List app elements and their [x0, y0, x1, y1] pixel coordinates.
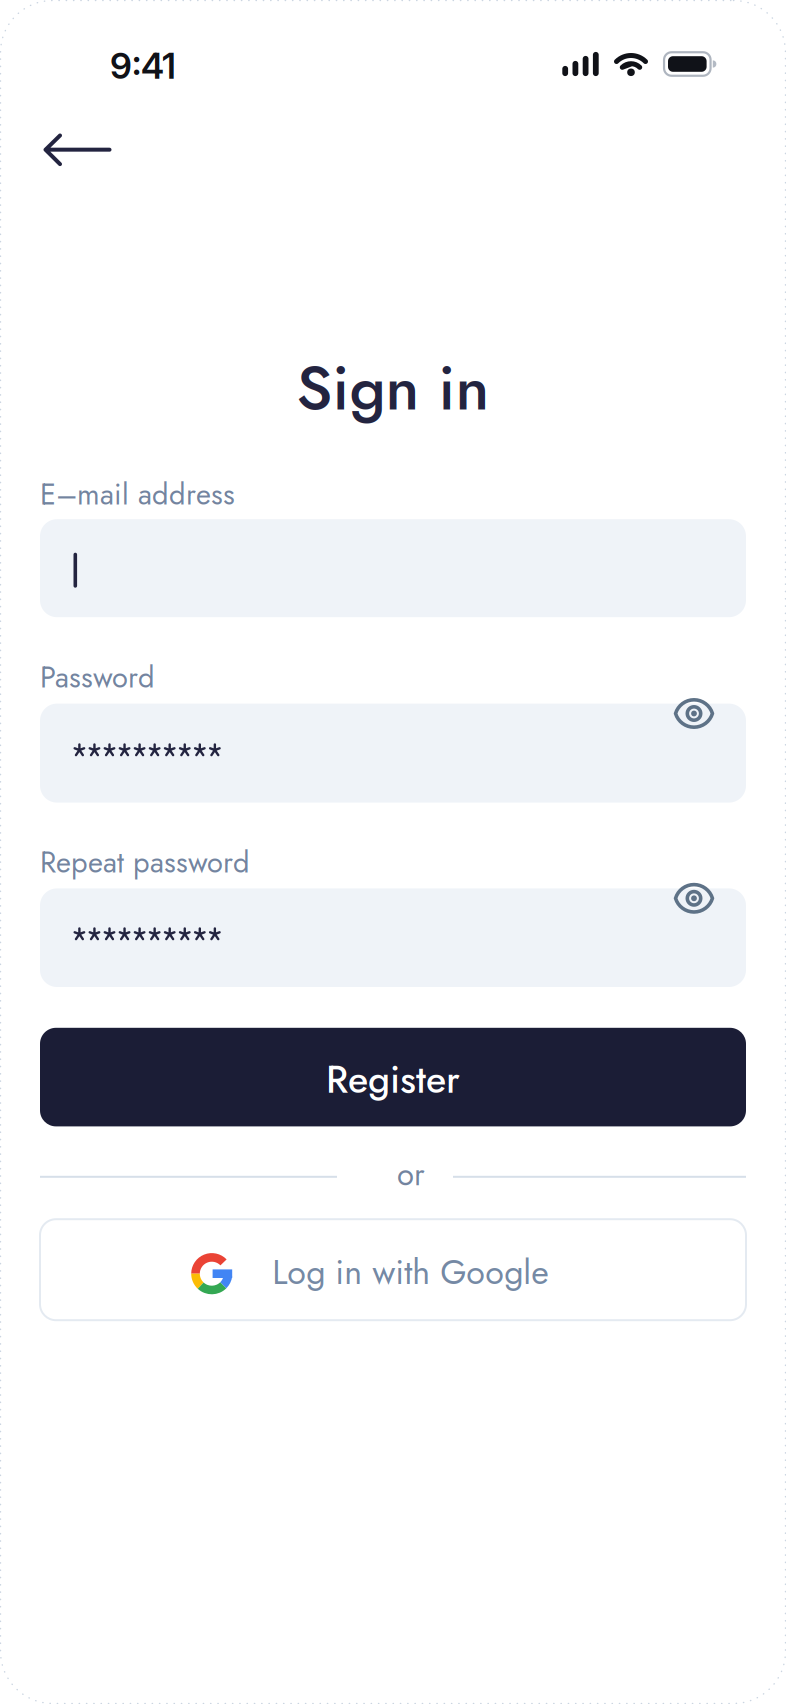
button[interactable]: Register: [40, 1028, 746, 1126]
button[interactable]: Back: [43, 134, 111, 166]
staticText: 9:41: [110, 45, 176, 87]
staticText: or: [397, 1152, 425, 1197]
button[interactable]: Repeat password: [40, 888, 746, 987]
button[interactable]: Show password: [671, 694, 717, 732]
staticText: Password: [40, 656, 155, 698]
staticText: Repeat password: [40, 841, 250, 883]
staticText: Sign in: [296, 343, 489, 433]
staticText: Register: [326, 1052, 460, 1107]
button[interactable]: Show repeated password: [671, 879, 717, 917]
staticText: E–mail address: [40, 473, 235, 515]
button[interactable]: E-mail address: [40, 519, 746, 617]
staticText: Log in with Google: [272, 1247, 549, 1297]
button[interactable]: Log in with Google: [40, 1219, 746, 1320]
button[interactable]: Password: [40, 704, 746, 803]
